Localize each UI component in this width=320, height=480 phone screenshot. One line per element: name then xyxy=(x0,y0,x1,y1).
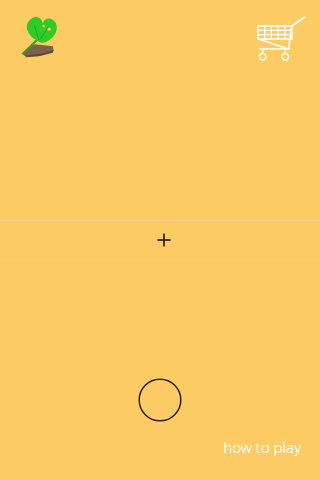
button[interactable]: how to play xyxy=(205,436,301,458)
staticText: how to play xyxy=(223,437,301,457)
button[interactable]: Start xyxy=(137,377,183,423)
button[interactable]: Shopping cart xyxy=(254,13,308,63)
button[interactable]: Home logo xyxy=(16,14,62,60)
button[interactable]: Add item xyxy=(0,220,320,260)
